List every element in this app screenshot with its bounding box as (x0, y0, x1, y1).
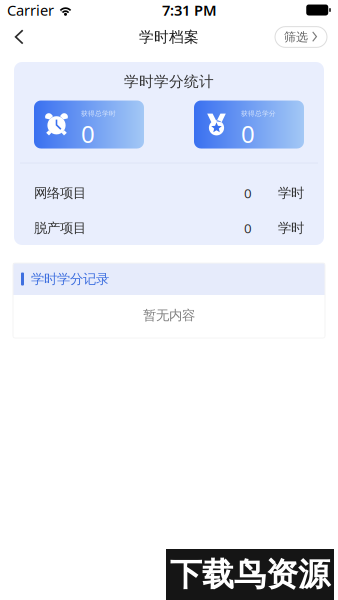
staticText: 学时学分记录 (31, 271, 109, 287)
staticText: 0 (244, 219, 252, 237)
button[interactable]: 筛选 (275, 27, 327, 47)
staticText: 0 (81, 118, 95, 150)
staticText: 学时档案 (139, 28, 199, 46)
staticText: 筛选 (284, 30, 308, 44)
staticText: 获得总学时 (81, 109, 116, 118)
staticText: 获得总学分 (241, 109, 276, 118)
staticText: 0 (244, 184, 252, 202)
staticText: 学时 (278, 220, 304, 236)
staticText: 7:31 PM (162, 0, 217, 20)
staticText: 脱产项目 (34, 220, 86, 236)
staticText: 学时学分统计 (124, 72, 214, 90)
button[interactable]: 返回 (0, 20, 38, 54)
staticText: 暂无内容 (143, 307, 195, 323)
staticText: Carrier (7, 0, 54, 20)
staticText: 0 (241, 118, 255, 150)
staticText: 下载鸟资源 (170, 555, 330, 594)
staticText: 学时 (278, 185, 304, 201)
staticText: 网络项目 (34, 185, 86, 201)
